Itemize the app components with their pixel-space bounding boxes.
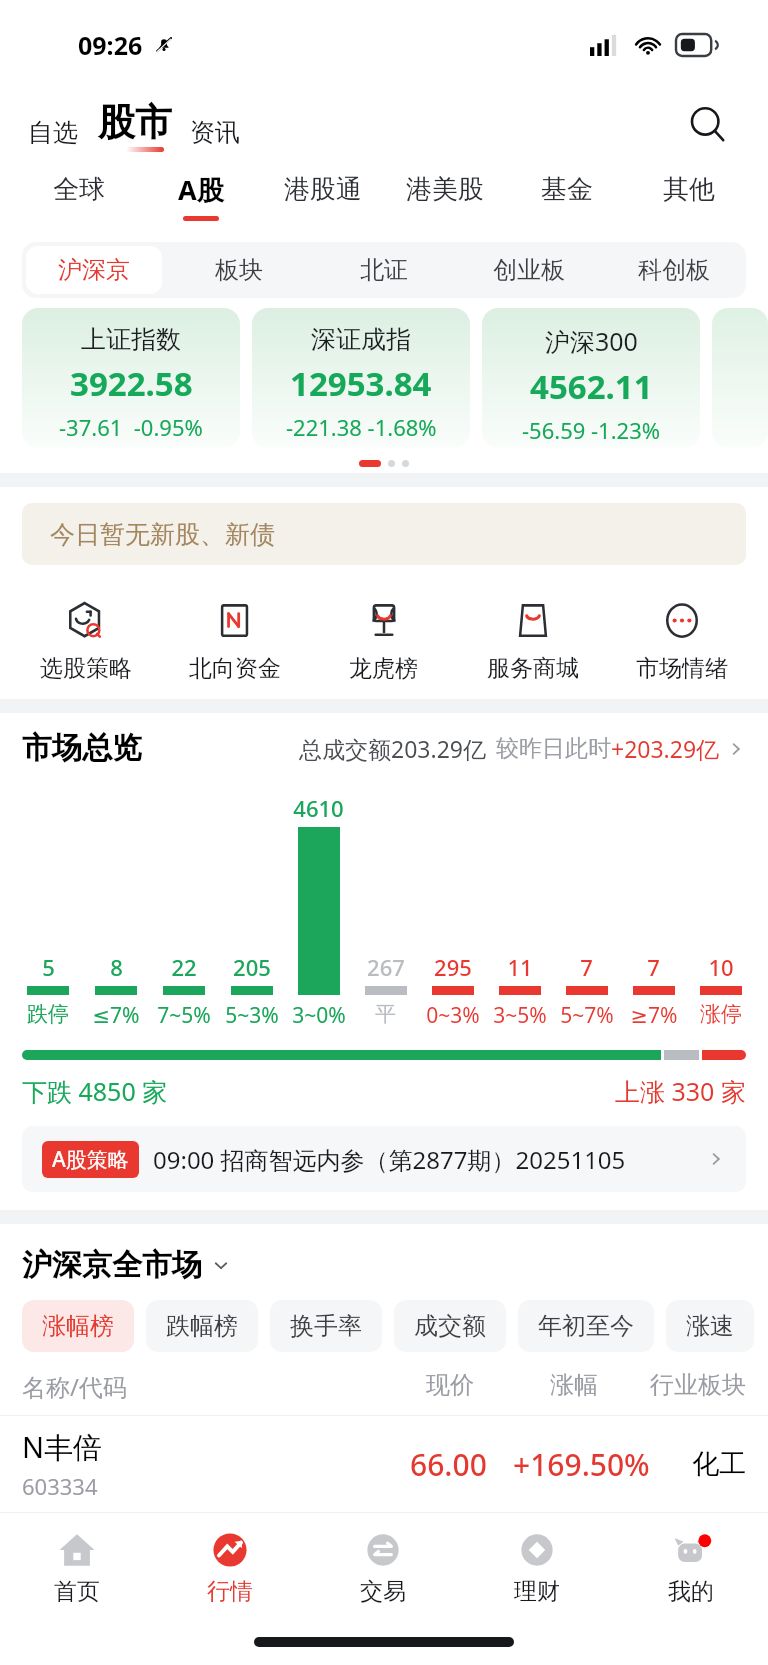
staticText: 7~5% (157, 1001, 211, 1030)
button[interactable]: 科创板 (605, 246, 742, 294)
button[interactable]: 港美股 (384, 160, 506, 232)
button[interactable]: 自选 (26, 113, 80, 152)
button[interactable]: 北证 (315, 246, 452, 294)
staticText: 理财 (514, 1577, 560, 1606)
button[interactable]: 全球 (18, 160, 140, 232)
button[interactable]: 成交额 (394, 1300, 506, 1352)
button[interactable]: 我的 (614, 1513, 768, 1619)
staticText: N丰倍 (22, 1427, 103, 1467)
button[interactable]: N丰倍 (22, 1416, 746, 1512)
button[interactable]: 北向资金 (160, 585, 309, 695)
staticText: 涨幅榜 (42, 1311, 114, 1341)
staticText: 09:00 招商智远内参（第2877期）20251105 (153, 1143, 626, 1176)
button[interactable]: 总成交额203.29亿 (299, 733, 746, 764)
staticText: A股策略 (52, 1145, 129, 1174)
button[interactable]: 龙虎榜 (309, 585, 458, 695)
button[interactable]: 行情 (153, 1513, 306, 1619)
button[interactable]: A股 (140, 160, 262, 232)
button[interactable]: 市场情绪 (607, 585, 756, 695)
button[interactable]: 港股通 (262, 160, 384, 232)
staticText: 下跌 4850 家 (22, 1074, 168, 1108)
staticText: 上涨 330 家 (615, 1074, 746, 1108)
staticText: 现价 (426, 1370, 474, 1400)
staticText: 3~5% (493, 1001, 547, 1030)
staticText: 11 (507, 952, 533, 982)
button[interactable]: 交易 (306, 1513, 460, 1619)
staticText: 平 (375, 1001, 396, 1027)
staticText: 北向资金 (189, 654, 281, 683)
staticText: 市场总览 (22, 729, 142, 767)
button[interactable]: 上证指数 (22, 308, 240, 448)
button[interactable]: 其他 (628, 160, 750, 232)
staticText: ≤7% (92, 1001, 140, 1030)
staticText: 10 (708, 952, 734, 982)
staticText: 上证指数 (81, 324, 181, 355)
staticText: 跌停 (27, 1001, 69, 1027)
staticText: 选股策略 (40, 654, 132, 683)
button[interactable]: 涨幅榜 (22, 1300, 134, 1352)
button[interactable]: 首页 (0, 1513, 153, 1619)
staticText: 3~0% (292, 1001, 346, 1030)
staticText: ≥7% (630, 1001, 678, 1030)
staticText: 22 (171, 952, 197, 982)
staticText: 沪深300 (545, 324, 638, 358)
staticText: 5~7% (560, 1001, 614, 1030)
staticText: 较昨日此时 (496, 734, 611, 763)
button[interactable]: 板块 (170, 246, 307, 294)
staticText: 3922.58 (70, 361, 193, 406)
staticText: +203.29亿 (611, 733, 720, 764)
button[interactable]: 年初至今 (518, 1300, 654, 1352)
staticText: 年初至今 (538, 1311, 634, 1341)
button[interactable]: 沪深京全市场 (22, 1246, 768, 1284)
staticText: 创业板 (493, 255, 565, 285)
button[interactable]: 深证成指 (252, 308, 470, 448)
button[interactable]: 沪深京 (26, 246, 162, 294)
staticText: 全球 (53, 173, 105, 206)
staticText: 沪深京全市场 (22, 1246, 202, 1284)
staticText: 资讯 (190, 117, 240, 148)
staticText: 化工 (692, 1447, 746, 1481)
staticText: 5~3% (225, 1001, 279, 1030)
button[interactable]: 沪深300 (482, 308, 700, 448)
staticText: -221.38 -1.68% (286, 412, 437, 442)
button[interactable]: 股市 (96, 99, 174, 152)
staticText: 行情 (207, 1577, 253, 1606)
button[interactable]: 换手率 (270, 1300, 382, 1352)
button[interactable]: 选股策略 (12, 585, 160, 695)
staticText: 换手率 (290, 1311, 362, 1341)
button[interactable]: 理财 (460, 1513, 614, 1619)
button[interactable]: 创业板 (460, 246, 597, 294)
staticText: 5 (42, 952, 55, 982)
staticText: 涨停 (700, 1001, 742, 1027)
button[interactable]: 涨速 (666, 1300, 754, 1352)
staticText: 跌幅榜 (166, 1311, 238, 1341)
button[interactable]: 今日暂无新股、新债 (22, 503, 746, 565)
staticText: 北证 (360, 255, 408, 285)
staticText: 名称/代码 (22, 1370, 127, 1403)
staticText: 7 (647, 952, 660, 982)
staticText: 服务商城 (487, 654, 579, 683)
staticText: 行业板块 (650, 1370, 746, 1400)
staticText: 首页 (54, 1577, 100, 1606)
staticText: 4610 (293, 793, 344, 823)
staticText: 成交额 (414, 1311, 486, 1341)
button[interactable]: 资讯 (188, 113, 242, 152)
staticText: 港股通 (284, 173, 362, 206)
staticText: 4562.11 (530, 364, 653, 409)
staticText: 其他 (663, 173, 715, 206)
staticText: 7 (580, 952, 593, 982)
staticText: A股 (178, 171, 224, 208)
staticText: 板块 (215, 255, 263, 285)
staticText: 股市 (98, 99, 172, 146)
button[interactable]: 基金 (506, 160, 628, 232)
staticText: 深证成指 (311, 324, 411, 355)
button[interactable] (712, 308, 768, 448)
staticText: +169.50% (513, 1444, 650, 1485)
button[interactable]: Search (682, 99, 734, 151)
button[interactable]: 服务商城 (458, 585, 607, 695)
staticText: 12953.84 (290, 361, 432, 406)
staticText: 8 (110, 952, 123, 982)
button[interactable]: 跌幅榜 (146, 1300, 258, 1352)
button[interactable]: A股策略 (22, 1126, 746, 1192)
staticText: 603334 (22, 1471, 98, 1501)
